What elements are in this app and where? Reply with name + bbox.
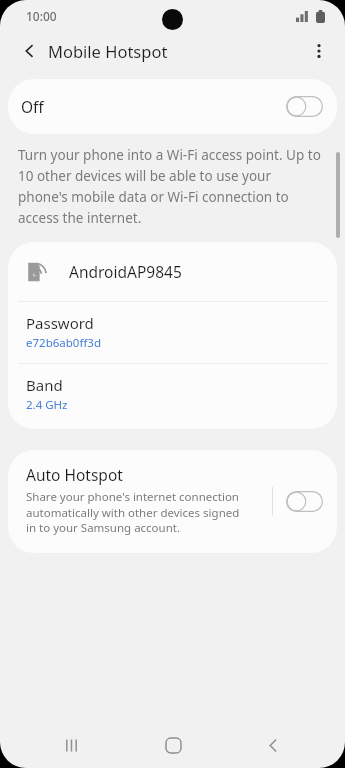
button[interactable]: Home xyxy=(144,722,202,768)
button[interactable]: Password xyxy=(8,302,337,363)
button[interactable]: Auto Hotspot xyxy=(8,450,337,553)
staticText: Mobile Hotspot xyxy=(48,40,168,62)
staticText: Off xyxy=(21,96,44,117)
staticText: e72b6ab0ff3d xyxy=(26,335,101,351)
button[interactable]: Band xyxy=(8,364,337,429)
button[interactable]: Back xyxy=(13,34,47,68)
staticText: 10:00 xyxy=(26,8,57,24)
button[interactable]: Back xyxy=(244,722,302,768)
button[interactable]: More options xyxy=(301,33,337,69)
button[interactable]: Off xyxy=(8,79,337,134)
staticText: Share your phone's internet connection a… xyxy=(26,489,241,535)
staticText: Band xyxy=(26,375,63,395)
button[interactable]: Auto Hotspot switch xyxy=(286,491,323,512)
staticText: AndroidAP9845 xyxy=(69,261,182,282)
staticText: Auto Hotspot xyxy=(26,464,123,485)
staticText: 2.4 GHz xyxy=(26,397,68,413)
button[interactable]: AndroidAP9845 xyxy=(8,242,337,301)
staticText: Password xyxy=(26,313,94,333)
button[interactable]: Recent apps xyxy=(43,722,101,768)
staticText: Turn your phone into a Wi-Fi access poin… xyxy=(18,146,323,227)
